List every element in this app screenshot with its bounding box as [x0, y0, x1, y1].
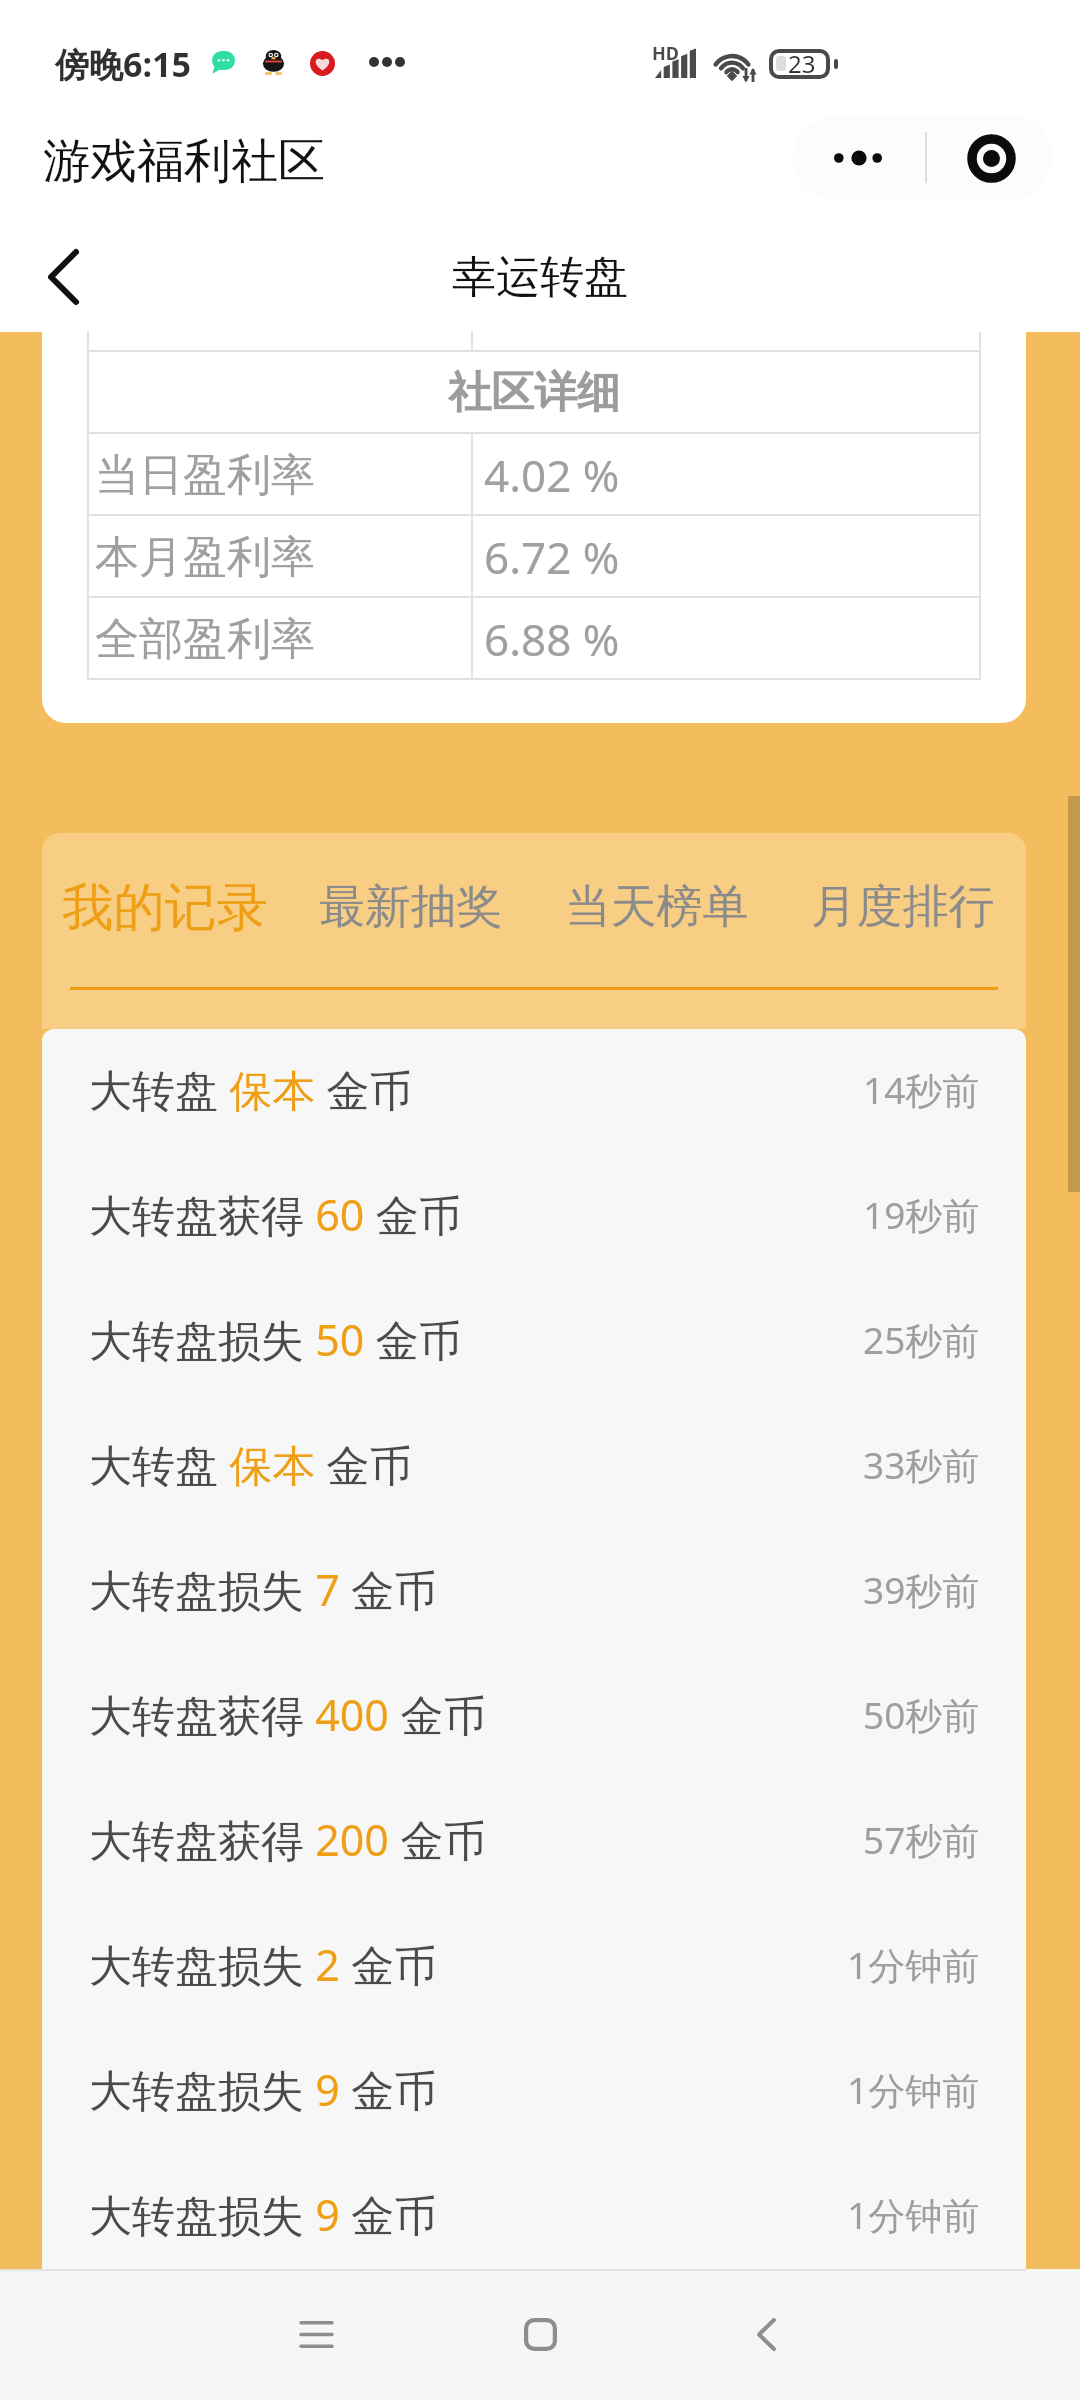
staticText: 57秒前 [863, 1814, 980, 1865]
staticText: 大转盘获得 400 金币 [89, 1685, 487, 1744]
staticText: 33秒前 [863, 1439, 980, 1490]
staticText: 6.88 % [484, 609, 620, 669]
staticText: 1分钟前 [847, 1939, 980, 1990]
staticText: 幸运转盘 [452, 250, 628, 305]
staticText: 大转盘损失 2 金币 [89, 1935, 437, 1994]
staticText: 社区详细 [448, 366, 620, 420]
staticText: 23 [788, 47, 816, 80]
staticText: 14秒前 [863, 1064, 980, 1115]
staticText: 大转盘 保本 金币 [89, 1060, 413, 1119]
staticText: 大转盘 保本 金币 [89, 1435, 413, 1494]
staticText: 当天榜单 [565, 878, 749, 936]
staticText: 全部盈利率 [95, 612, 315, 667]
staticText: 1分钟前 [847, 2064, 980, 2115]
staticText: 傍晚6:15 [55, 41, 191, 87]
staticText: 当日盈利率 [95, 448, 315, 503]
button[interactable]: Close mini program [930, 116, 1052, 200]
button[interactable]: 大转盘获得 200 金币 [42, 1779, 1026, 1904]
button[interactable]: 大转盘获得 60 金币 [42, 1154, 1026, 1279]
staticText: 25秒前 [863, 1314, 980, 1365]
staticText: 大转盘损失 9 金币 [89, 2060, 437, 2119]
button[interactable]: 大转盘损失 7 金币 [42, 1529, 1026, 1654]
button[interactable]: 我的记录 [42, 833, 288, 987]
staticText: 1分钟前 [847, 2189, 980, 2240]
button[interactable]: 当天榜单 [534, 833, 780, 987]
button[interactable]: 大转盘 保本 金币 [42, 1029, 1026, 1154]
staticText: 6.72 % [484, 527, 620, 587]
staticText: 4.02 % [484, 445, 620, 505]
button[interactable]: 大转盘损失 9 金币 [42, 2029, 1026, 2154]
button[interactable]: 大转盘 保本 金币 [42, 1404, 1026, 1529]
staticText: 50秒前 [863, 1689, 980, 1740]
button[interactable]: 大转盘损失 9 金币 [42, 2154, 1026, 2269]
button[interactable]: 大转盘损失 50 金币 [42, 1279, 1026, 1404]
staticText: 大转盘获得 60 金币 [89, 1185, 462, 1244]
staticText: 游戏福利社区 [43, 132, 325, 191]
staticText: 最新抽奖 [319, 878, 503, 936]
staticText: HD [652, 41, 679, 66]
staticText: 大转盘损失 50 金币 [89, 1310, 462, 1369]
staticText: 月度排行 [811, 878, 995, 936]
button[interactable]: 大转盘损失 2 金币 [42, 1904, 1026, 2029]
button[interactable]: More options [793, 116, 923, 200]
staticText: 我的记录 [62, 875, 268, 940]
staticText: 39秒前 [863, 1564, 980, 1615]
button[interactable]: More options [793, 116, 1052, 200]
button[interactable]: Back [676, 2269, 856, 2400]
staticText: 本月盈利率 [95, 530, 315, 585]
button[interactable]: Recent apps [226, 2269, 406, 2400]
staticText: 19秒前 [863, 1189, 980, 1240]
button[interactable]: Back [16, 230, 110, 324]
staticText: 大转盘获得 200 金币 [89, 1810, 487, 1869]
button[interactable]: 大转盘获得 400 金币 [42, 1654, 1026, 1779]
button[interactable]: 月度排行 [780, 833, 1026, 987]
button[interactable]: 最新抽奖 [288, 833, 534, 987]
button[interactable]: Home [450, 2269, 630, 2400]
staticText: 大转盘损失 9 金币 [89, 2185, 437, 2244]
staticText: 大转盘损失 7 金币 [89, 1560, 437, 1619]
